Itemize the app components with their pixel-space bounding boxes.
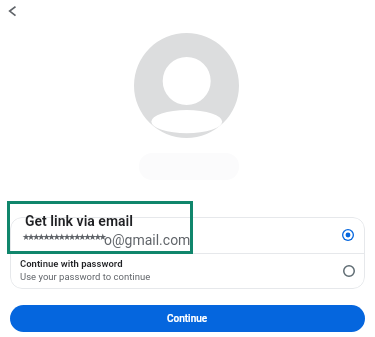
button[interactable]: Continue [10, 305, 365, 332]
staticText: Continue with password [20, 258, 123, 269]
staticText: o@gmail.com [104, 232, 191, 248]
staticText: Use your password to continue [20, 271, 151, 282]
staticText: Continue [167, 313, 208, 325]
button[interactable]: Continue with password [10, 254, 365, 289]
staticText: Get link via email [25, 213, 133, 229]
staticText: ★★★★★★★★★★★★★★★★ [22, 232, 104, 242]
button[interactable]: Back [0, 0, 26, 26]
button[interactable]: Get link via email [10, 217, 365, 253]
